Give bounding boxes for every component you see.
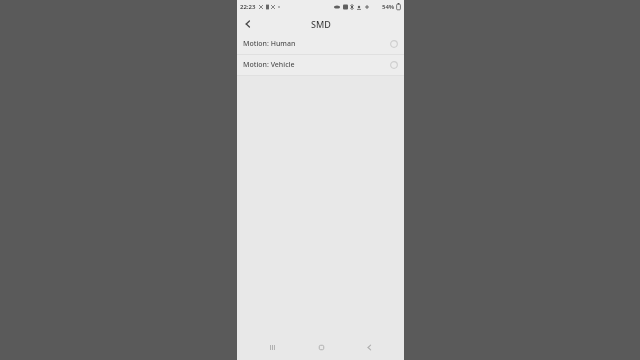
- button[interactable]: Back: [237, 13, 259, 34]
- button[interactable]: Motion: Human: [237, 34, 404, 54]
- staticText: 54%: [382, 3, 395, 11]
- button[interactable]: Recents: [259, 334, 285, 360]
- button[interactable]: Back: [356, 334, 382, 360]
- button[interactable]: Home: [308, 334, 334, 360]
- staticText: Motion: Human: [243, 39, 296, 49]
- staticText: Motion: Vehicle: [243, 60, 295, 70]
- staticText: SMD: [311, 18, 331, 30]
- staticText: 22:23: [240, 3, 256, 11]
- button[interactable]: Motion: Vehicle: [237, 55, 404, 75]
